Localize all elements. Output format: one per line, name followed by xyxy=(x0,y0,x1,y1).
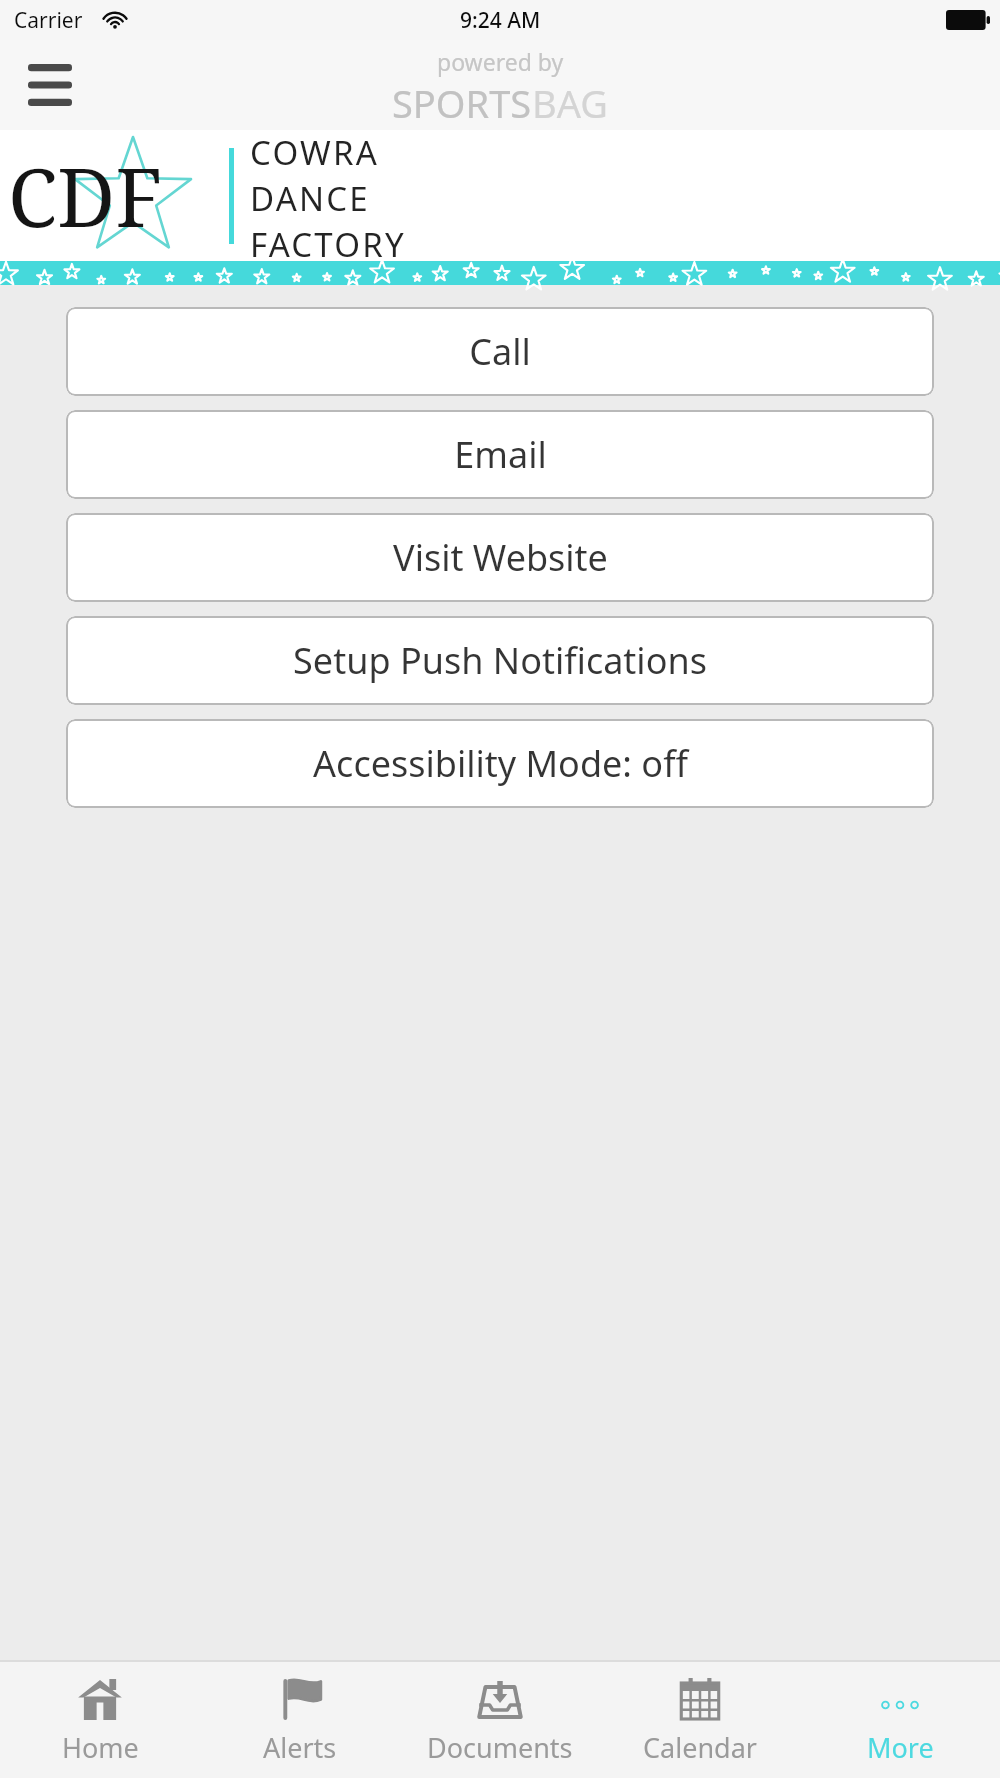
button[interactable]: Home xyxy=(0,1674,200,1766)
staticText: Call xyxy=(469,327,531,376)
staticText: Calendar xyxy=(643,1729,757,1766)
staticText: FACTORY xyxy=(250,222,406,261)
staticText: SPORTS xyxy=(392,77,532,129)
staticText: Accessibility Mode: off xyxy=(313,739,688,788)
button[interactable]: Alerts xyxy=(200,1674,400,1766)
button[interactable]: Menu xyxy=(22,59,78,111)
staticText: COWRA xyxy=(250,130,379,175)
staticText: Setup Push Notifications xyxy=(293,636,707,685)
button[interactable]: Documents xyxy=(400,1674,600,1766)
staticText: powered by xyxy=(437,46,564,77)
staticText: More xyxy=(867,1729,934,1766)
staticText: Alerts xyxy=(263,1729,337,1766)
button[interactable]: More xyxy=(800,1674,1000,1766)
staticText: BAG xyxy=(532,77,608,129)
button[interactable]: Visit Website xyxy=(66,513,934,602)
staticText: Carrier xyxy=(14,6,83,35)
button[interactable]: Calendar xyxy=(600,1674,800,1766)
staticText: CDF xyxy=(8,141,163,250)
staticText: Home xyxy=(62,1729,139,1766)
button[interactable]: Setup Push Notifications xyxy=(66,616,934,705)
staticText: Email xyxy=(454,430,547,479)
button[interactable]: Call xyxy=(66,307,934,396)
button[interactable]: Accessibility Mode: off xyxy=(66,719,934,808)
staticText: 9:24 AM xyxy=(460,6,541,35)
staticText: DANCE xyxy=(250,176,370,221)
staticText: Documents xyxy=(427,1729,573,1766)
staticText: Visit Website xyxy=(393,533,608,582)
button[interactable]: Email xyxy=(66,410,934,499)
